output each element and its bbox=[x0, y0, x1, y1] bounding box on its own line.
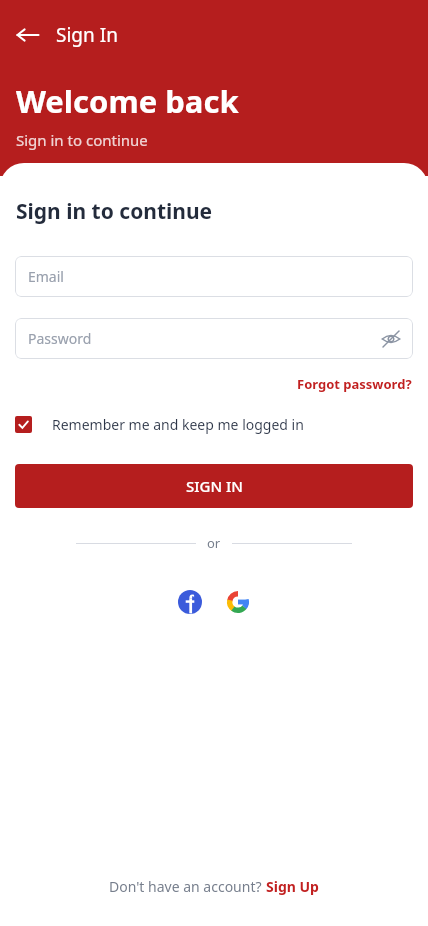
button[interactable]: Remember me and keep me logged in bbox=[0, 411, 428, 438]
button[interactable]: Forgot password? bbox=[281, 373, 428, 395]
staticText: Sign Up bbox=[266, 877, 319, 896]
staticText: Don't have an account? bbox=[109, 877, 266, 896]
button[interactable]: Sign in with Facebook bbox=[172, 584, 208, 620]
staticText: Forgot password? bbox=[297, 375, 412, 393]
staticText: Sign in to continue bbox=[16, 197, 213, 226]
staticText: SIGN IN bbox=[186, 476, 243, 496]
button[interactable]: Password bbox=[15, 318, 413, 359]
button[interactable]: Email bbox=[15, 256, 413, 297]
staticText: Welcome back bbox=[16, 80, 239, 122]
staticText: Password bbox=[28, 329, 92, 348]
staticText: or bbox=[207, 534, 221, 552]
other: Back bbox=[16, 23, 40, 47]
button[interactable]: SIGN IN bbox=[15, 464, 413, 508]
staticText: Sign in to continue bbox=[16, 130, 148, 150]
staticText: Email bbox=[28, 267, 64, 286]
staticText: Remember me and keep me logged in bbox=[52, 415, 304, 434]
staticText: Sign In bbox=[56, 22, 118, 48]
button[interactable]: Toggle password visibility bbox=[377, 325, 405, 353]
button[interactable]: Sign in with Google bbox=[220, 584, 256, 620]
button[interactable]: Don't have an account? bbox=[101, 873, 327, 900]
button[interactable]: Back bbox=[8, 16, 126, 54]
